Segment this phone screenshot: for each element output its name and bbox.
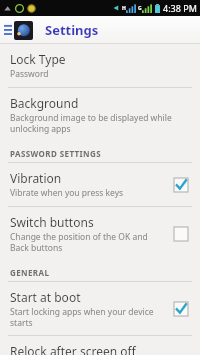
staticText: Background image to be displayed while u… [10, 112, 186, 134]
staticText: Start locking apps when your device star… [10, 306, 164, 328]
staticText: Settings [45, 21, 99, 39]
button[interactable]: Lock Type [0, 44, 200, 87]
staticText: Start at boot [10, 289, 81, 305]
staticText: Vibration [10, 170, 62, 186]
button[interactable]: Navigate up [2, 21, 35, 40]
staticText: Lock Type [10, 51, 66, 67]
staticText: PASSWORD SETTINGS [10, 148, 101, 159]
staticText: Vibrate when you press keys [10, 187, 124, 199]
button[interactable]: Switch buttons [0, 207, 200, 260]
button[interactable]: Checked [170, 174, 192, 196]
button[interactable]: Start at boot [0, 282, 200, 335]
staticText: 4:38 PM [163, 2, 197, 14]
button[interactable]: Relock after screen off [0, 336, 200, 355]
button[interactable]: Background [0, 88, 200, 141]
staticText: Change the position of the OK and Back b… [10, 231, 164, 253]
button[interactable]: Unchecked [170, 223, 192, 245]
staticText: Switch buttons [10, 214, 94, 230]
staticText: Password [10, 68, 49, 80]
button[interactable]: Checked [170, 298, 192, 320]
staticText: H [122, 5, 126, 12]
staticText: Background [10, 95, 79, 111]
button[interactable]: Vibration [0, 163, 200, 206]
staticText: GENERAL [10, 267, 50, 278]
staticText: Relock after screen off [10, 343, 136, 355]
staticText: G [138, 5, 142, 12]
